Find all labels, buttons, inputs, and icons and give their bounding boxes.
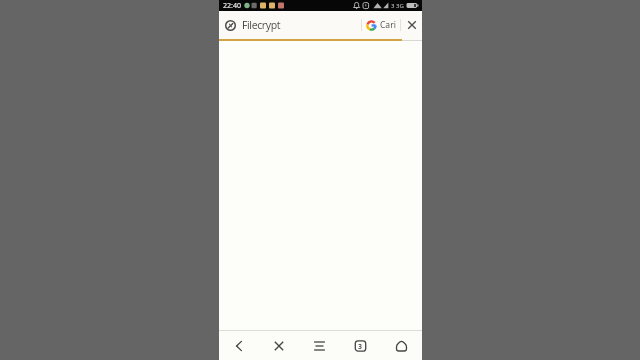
button[interactable] xyxy=(219,331,259,360)
button[interactable]: Cari xyxy=(362,11,400,39)
staticText: 3 xyxy=(358,342,363,352)
staticText: Cari xyxy=(380,19,396,31)
staticText: 3 3G xyxy=(391,2,404,10)
button[interactable]: Filecrypt xyxy=(242,18,281,32)
button[interactable] xyxy=(401,11,422,39)
button[interactable] xyxy=(299,331,340,360)
button[interactable] xyxy=(381,331,422,360)
staticText: 22:40 xyxy=(223,1,241,11)
button[interactable] xyxy=(225,20,236,31)
button[interactable] xyxy=(259,331,299,360)
button[interactable]: 3 xyxy=(340,331,381,360)
